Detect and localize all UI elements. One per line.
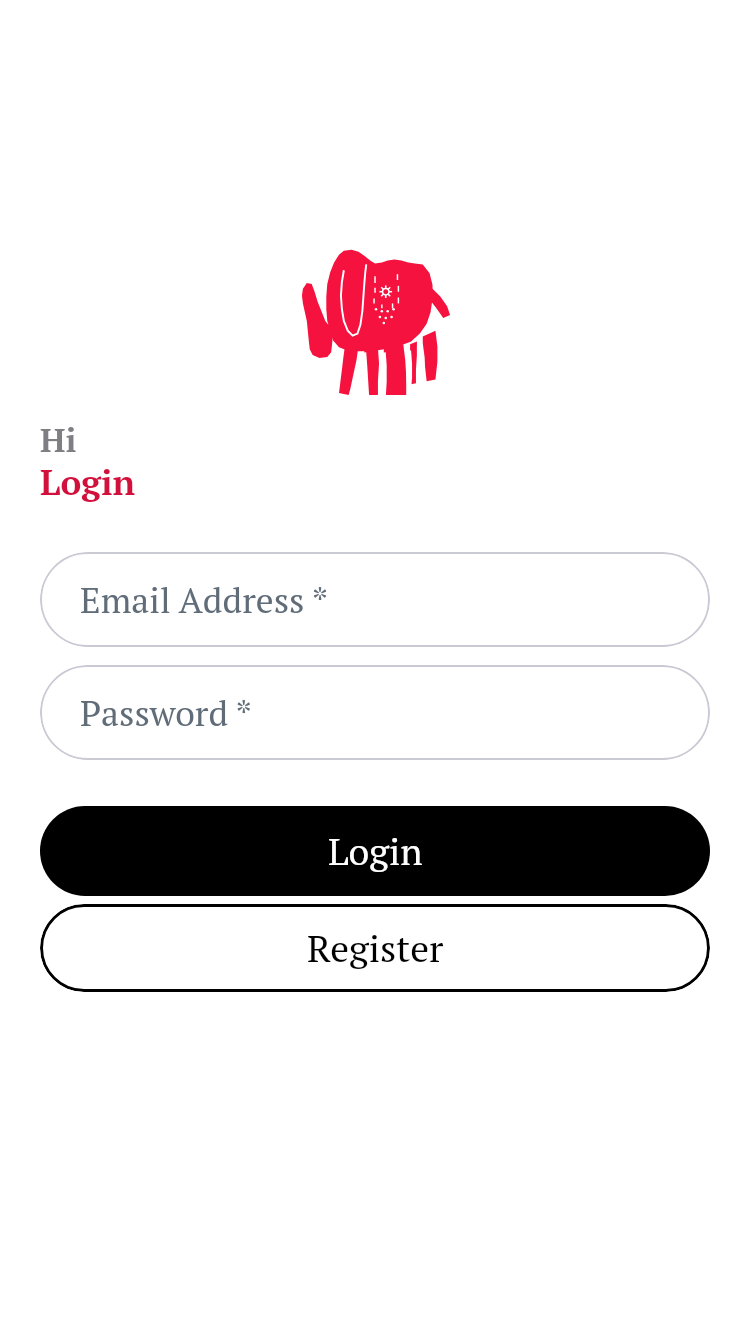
staticText: Register [307,923,444,973]
button[interactable]: Password * [40,665,710,760]
staticText: Email Address * [80,576,329,623]
button[interactable]: Email Address * [40,552,710,647]
other: Elephant logo [300,243,452,395]
staticText: Login [40,459,136,505]
button[interactable]: Login [40,806,710,896]
staticText: Hi [40,418,77,462]
button[interactable]: Register [40,904,710,992]
staticText: Password * [80,689,252,736]
staticText: Login [328,826,423,876]
